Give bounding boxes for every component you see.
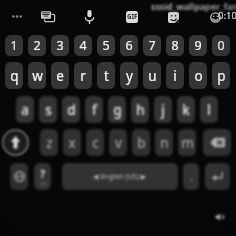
button[interactable]: Emoji [210, 12, 221, 23]
staticText: 5 [102, 37, 110, 54]
staticText: 2 [33, 37, 41, 54]
staticText: a [21, 101, 29, 119]
button[interactable]: ◀ English (US) ▶ [62, 163, 178, 190]
staticText: ◀ English (US) ▶ [93, 172, 147, 182]
staticText: b [137, 134, 146, 152]
button[interactable]: a [16, 96, 34, 123]
button[interactable]: More options [9, 8, 25, 24]
button[interactable]: c [86, 129, 104, 156]
button[interactable]: j [154, 96, 172, 123]
button[interactable]: e [51, 62, 69, 89]
button[interactable]: s [39, 96, 57, 123]
button[interactable]: u [143, 62, 161, 89]
button[interactable]: Voice input [81, 8, 98, 25]
button[interactable]: y [120, 62, 138, 89]
button[interactable]: w [28, 62, 46, 89]
button[interactable]: Clipboard [38, 8, 58, 28]
staticText: c [92, 134, 99, 152]
staticText: 6 [125, 37, 133, 54]
button[interactable]: . [183, 163, 199, 190]
staticText: n [160, 134, 169, 152]
button[interactable]: m [178, 129, 196, 156]
button[interactable]: f [85, 96, 103, 123]
button[interactable]: Backspace [203, 129, 231, 156]
staticText: l [207, 101, 211, 119]
staticText: 0:10 [218, 9, 236, 22]
button[interactable]: p [212, 62, 230, 89]
staticText: GIF [127, 13, 138, 21]
staticText: r [80, 67, 86, 85]
button[interactable]: 5 [97, 35, 115, 56]
button[interactable]: k [177, 96, 195, 123]
staticText: z [46, 134, 53, 152]
button[interactable]: z [40, 129, 58, 156]
button[interactable]: 9 [189, 35, 207, 56]
staticText: 1 [10, 37, 18, 54]
staticText: h [136, 101, 145, 119]
staticText: m [181, 134, 194, 152]
button[interactable]: t [97, 62, 115, 89]
staticText: i [173, 67, 177, 85]
staticText: g [113, 101, 122, 119]
staticText: sssid_wallpaper_fan [151, 0, 236, 12]
button[interactable]: b [132, 129, 150, 156]
button[interactable]: 6 [120, 35, 138, 56]
button[interactable]: 4 [74, 35, 92, 56]
button[interactable]: Stickers [168, 12, 179, 23]
button[interactable]: ? [34, 163, 51, 190]
button[interactable]: Switch language [10, 163, 28, 190]
staticText: 4 [79, 37, 87, 54]
button[interactable]: 8 [166, 35, 184, 56]
staticText: 3 [56, 37, 64, 54]
staticText: y [126, 67, 133, 85]
button[interactable]: 2 [28, 35, 46, 56]
staticText: w [32, 67, 43, 85]
button[interactable]: 3 [51, 35, 69, 56]
button[interactable]: n [155, 129, 173, 156]
staticText: t [104, 67, 109, 85]
staticText: 8 [171, 37, 179, 54]
button[interactable]: o [189, 62, 207, 89]
staticText: q [10, 67, 19, 85]
staticText: 9 [194, 37, 202, 54]
staticText: 7 [148, 37, 156, 54]
staticText: 123 [39, 181, 47, 187]
button[interactable]: q [5, 62, 23, 89]
staticText: o [194, 67, 203, 85]
staticText: d [67, 101, 76, 119]
staticText: 0 [217, 37, 225, 54]
button[interactable]: 7 [143, 35, 161, 56]
button[interactable]: l [200, 96, 218, 123]
staticText: k [182, 101, 190, 119]
button[interactable]: 1 [5, 35, 23, 56]
button[interactable]: x [63, 129, 81, 156]
button[interactable]: h [131, 96, 149, 123]
staticText: f [92, 101, 97, 119]
button[interactable]: v [109, 129, 127, 156]
button[interactable]: Volume [211, 209, 227, 225]
button[interactable]: Enter [205, 163, 230, 190]
button[interactable]: r [74, 62, 92, 89]
staticText: u [148, 67, 157, 85]
button[interactable]: 0 [212, 35, 230, 56]
button[interactable]: i [166, 62, 184, 89]
staticText: p [217, 67, 226, 85]
staticText: j [161, 101, 165, 119]
staticText: v [115, 134, 122, 152]
staticText: s [45, 101, 52, 119]
staticText: . [190, 169, 193, 184]
button[interactable]: g [108, 96, 126, 123]
button[interactable]: d [62, 96, 80, 123]
staticText: ? [40, 166, 46, 181]
staticText: e [56, 67, 64, 85]
button[interactable]: GIF [126, 11, 138, 23]
staticText: x [68, 134, 76, 152]
button[interactable]: Shift [0, 129, 31, 156]
